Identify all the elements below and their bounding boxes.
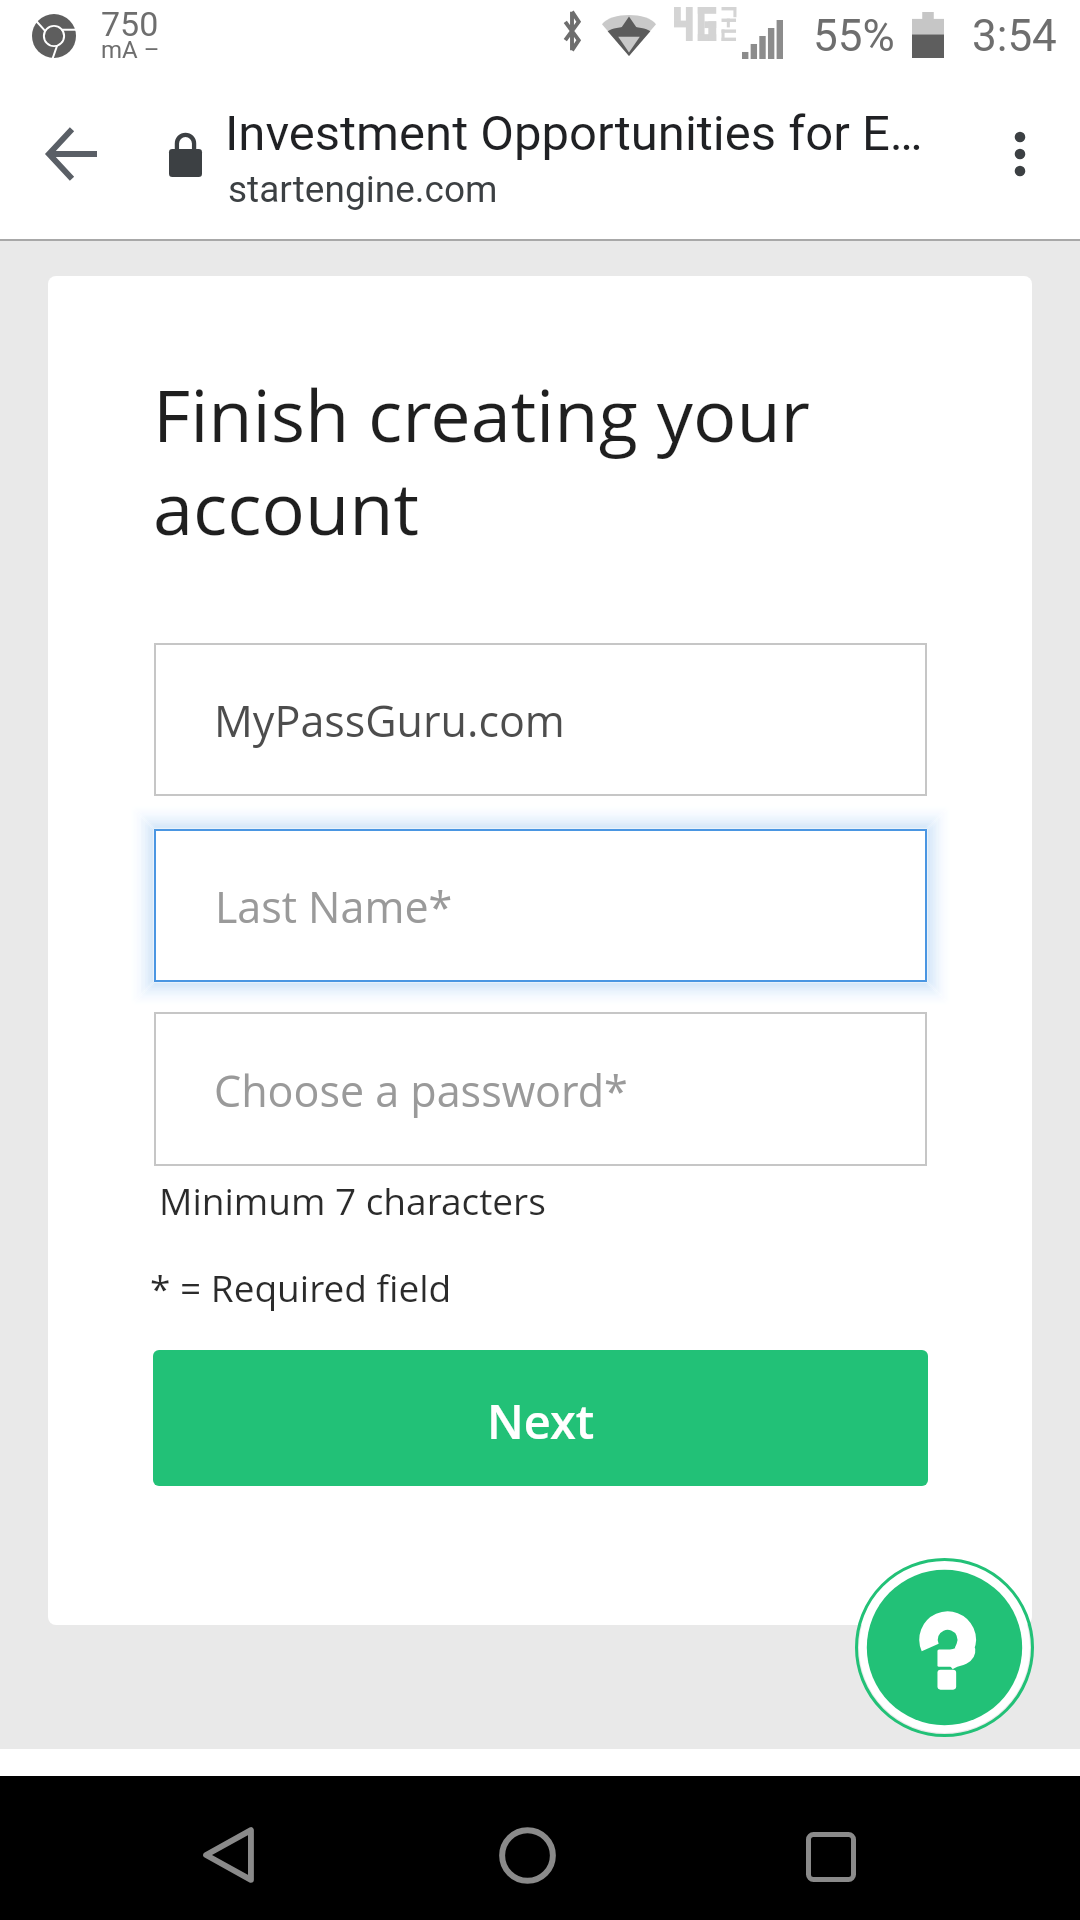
staticText: 3:54 <box>972 10 1057 62</box>
button[interactable]: MyPassGuru.com <box>154 643 927 796</box>
staticText: Last Name* <box>215 877 453 936</box>
button[interactable]: Back <box>28 110 116 198</box>
staticText: MyPassGuru.com <box>214 691 565 750</box>
button[interactable]: More options <box>976 110 1064 198</box>
button[interactable]: Back <box>168 1795 288 1915</box>
staticText: Minimum 7 characters <box>159 1175 546 1225</box>
staticText: Choose a password* <box>214 1061 628 1120</box>
button[interactable]: Help <box>855 1558 1034 1737</box>
staticText: Finish creating your account <box>153 365 810 556</box>
staticText: * = Required field <box>150 1262 452 1312</box>
button[interactable]: Recent apps <box>771 1797 891 1917</box>
button[interactable]: Next <box>153 1350 928 1486</box>
staticText: 750 <box>101 4 159 44</box>
staticText: 55% <box>813 10 895 62</box>
staticText: Next <box>487 1389 595 1453</box>
staticText: mA – <box>101 36 160 64</box>
staticText: Investment Opportunities for E… <box>225 105 923 162</box>
button[interactable]: Last Name* <box>154 829 927 982</box>
staticText: startengine.com <box>228 168 498 211</box>
button[interactable]: Choose a password* <box>154 1012 927 1166</box>
button[interactable]: Home <box>467 1795 587 1915</box>
